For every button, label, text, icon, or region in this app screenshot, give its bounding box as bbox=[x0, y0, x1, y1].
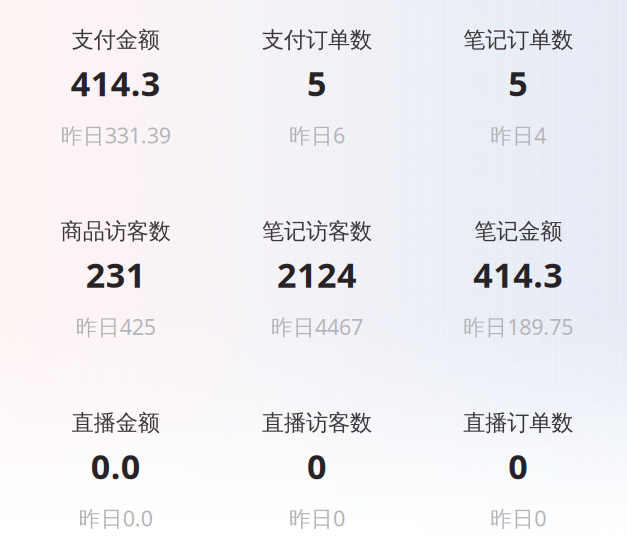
button[interactable]: 直播访客数 bbox=[216, 412, 418, 528]
staticText: 昨日6 bbox=[289, 120, 345, 150]
button[interactable]: 笔记金额 bbox=[418, 220, 619, 337]
button[interactable]: 支付订单数 bbox=[216, 29, 418, 145]
staticText: 5 bbox=[307, 60, 327, 106]
staticText: 414.3 bbox=[473, 251, 563, 298]
staticText: 直播订单数 bbox=[463, 409, 573, 437]
staticText: 支付订单数 bbox=[262, 26, 372, 54]
staticText: 支付金额 bbox=[72, 26, 160, 54]
staticText: 笔记金额 bbox=[474, 217, 562, 245]
staticText: 0 bbox=[307, 443, 327, 489]
button[interactable]: 直播金额 bbox=[15, 412, 216, 528]
staticText: 昨日4467 bbox=[271, 312, 363, 341]
staticText: 昨日425 bbox=[76, 312, 156, 341]
button[interactable]: 支付金额 bbox=[15, 29, 216, 145]
staticText: 昨日0 bbox=[289, 503, 345, 533]
staticText: 昨日189.75 bbox=[463, 312, 573, 341]
button[interactable]: 直播订单数 bbox=[418, 412, 619, 528]
staticText: 笔记订单数 bbox=[463, 26, 573, 54]
staticText: 昨日0.0 bbox=[79, 503, 153, 533]
button[interactable]: 笔记访客数 bbox=[216, 220, 418, 337]
staticText: 直播金额 bbox=[72, 409, 160, 437]
staticText: 231 bbox=[86, 251, 146, 298]
button[interactable]: 商品访客数 bbox=[15, 220, 216, 337]
staticText: 414.3 bbox=[71, 60, 161, 106]
button[interactable]: 笔记订单数 bbox=[418, 29, 619, 145]
staticText: 5 bbox=[508, 60, 528, 106]
staticText: 商品访客数 bbox=[61, 217, 171, 245]
staticText: 直播访客数 bbox=[262, 409, 372, 437]
staticText: 昨日0 bbox=[490, 503, 546, 533]
staticText: 昨日4 bbox=[490, 120, 546, 150]
staticText: 2124 bbox=[277, 251, 357, 298]
staticText: 0 bbox=[508, 443, 528, 489]
staticText: 0.0 bbox=[91, 443, 141, 489]
staticText: 笔记访客数 bbox=[262, 217, 372, 245]
staticText: 昨日331.39 bbox=[61, 120, 171, 150]
